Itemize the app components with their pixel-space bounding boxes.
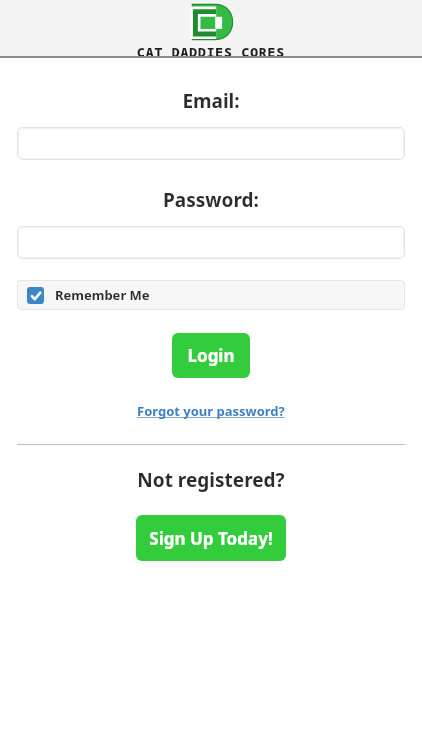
button[interactable]: Login	[172, 333, 250, 378]
staticText: Login	[187, 344, 235, 367]
staticText: Forgot your password?	[137, 402, 285, 420]
button[interactable]	[17, 127, 405, 160]
button[interactable]: Sign Up Today!	[136, 515, 286, 561]
staticText: Not registered?	[137, 467, 285, 493]
staticText: Email:	[182, 88, 240, 114]
staticText: Remember Me	[55, 286, 150, 304]
staticText: Password:	[163, 187, 259, 213]
staticText: CAT DADDIES CORES	[137, 43, 285, 56]
button[interactable]: Forgot your password?	[133, 400, 289, 422]
other: Cat Daddies Cores logo	[185, 2, 237, 42]
button[interactable]	[17, 226, 405, 259]
button[interactable]: Remember Me	[17, 280, 405, 310]
staticText: Sign Up Today!	[149, 527, 273, 550]
